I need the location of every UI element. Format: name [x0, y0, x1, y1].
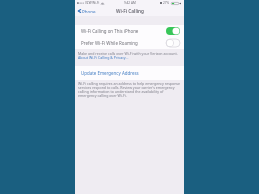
- staticText: 9:42 AM: [124, 1, 136, 5]
- button[interactable]: Update Emergency Address: [75, 66, 184, 80]
- button[interactable]: Prefer Wi-Fi While Roaming: [75, 37, 184, 49]
- button[interactable]: Toggle off: [166, 39, 180, 47]
- button[interactable]: Make and receive calls over Wi-Fi with y…: [75, 49, 184, 60]
- staticText: VZW Wi-Fi: [85, 1, 100, 5]
- staticText: Prefer Wi-Fi While Roaming: [81, 40, 138, 46]
- staticText: Wi-Fi Calling: [116, 8, 144, 14]
- button[interactable]: Back to Phone: [78, 8, 96, 14]
- staticText: Phone: [82, 9, 96, 13]
- staticText: Make and receive calls over Wi-Fi with y…: [78, 51, 178, 60]
- button[interactable]: Wi-Fi Calling on This iPhone: [75, 25, 184, 37]
- staticText: Update Emergency Address: [81, 70, 139, 76]
- staticText: Wi-Fi calling requires an address to hel…: [78, 81, 181, 98]
- staticText: Wi-Fi Calling on This iPhone: [81, 28, 139, 34]
- button[interactable]: Toggle on: [166, 27, 180, 35]
- staticText: 27%: [163, 1, 170, 5]
